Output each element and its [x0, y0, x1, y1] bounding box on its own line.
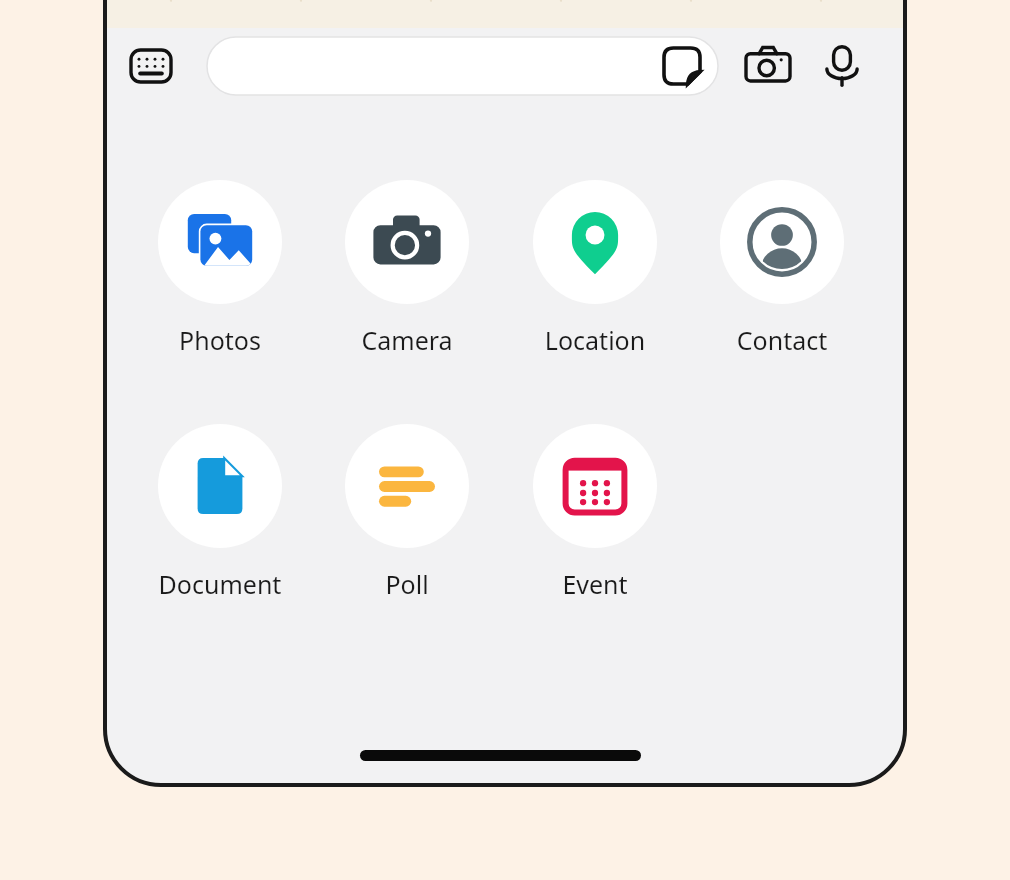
- button[interactable]: Photos: [135, 180, 305, 357]
- staticText: Photos: [135, 323, 305, 357]
- button[interactable]: Camera: [740, 38, 796, 94]
- button[interactable]: Contact: [697, 180, 867, 357]
- button[interactable]: Keyboard: [125, 40, 177, 92]
- button[interactable]: Location: [510, 180, 680, 357]
- button[interactable]: Voice message: [814, 38, 870, 94]
- staticText: Location: [510, 323, 680, 357]
- button[interactable]: Document: [135, 424, 305, 601]
- staticText: Document: [135, 567, 305, 601]
- button[interactable]: Poll: [322, 424, 492, 601]
- button[interactable]: Stickers: [207, 37, 718, 95]
- staticText: Event: [510, 567, 680, 601]
- staticText: Poll: [322, 567, 492, 601]
- button[interactable]: Event: [510, 424, 680, 601]
- staticText: Contact: [697, 323, 867, 357]
- staticText: Camera: [322, 323, 492, 357]
- button[interactable]: Camera: [322, 180, 492, 357]
- button[interactable]: Stickers: [660, 44, 704, 88]
